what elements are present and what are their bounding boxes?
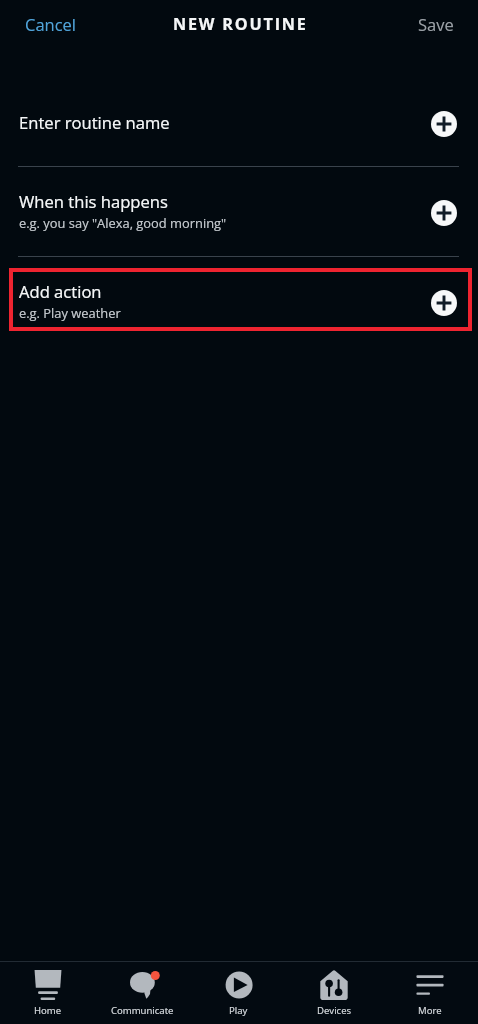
staticText: NEW ROUTINE <box>173 13 308 35</box>
staticText: e.g. Play weather <box>19 304 121 322</box>
staticText: Enter routine name <box>19 111 170 134</box>
staticText: e.g. you say "Alexa, good morning" <box>19 214 227 232</box>
button[interactable]: Play <box>190 962 286 1024</box>
button[interactable]: Communicate <box>95 962 190 1024</box>
button[interactable]: When this happens <box>0 171 478 251</box>
staticText: Home <box>34 1004 62 1017</box>
button[interactable]: Home <box>0 962 95 1024</box>
staticText: When this happens <box>19 190 168 213</box>
button[interactable]: Enter routine name <box>0 87 478 157</box>
button[interactable]: Add action <box>0 261 478 341</box>
button[interactable]: Devices <box>286 962 382 1024</box>
staticText: Cancel <box>25 13 77 35</box>
button[interactable]: Add <box>431 111 457 137</box>
staticText: Add action <box>19 280 102 303</box>
staticText: Devices <box>317 1004 352 1017</box>
staticText: Communicate <box>111 1004 174 1017</box>
staticText: More <box>418 1004 442 1017</box>
button[interactable]: Add <box>431 290 457 316</box>
button[interactable]: Cancel <box>0 3 103 45</box>
staticText: Play <box>229 1004 248 1017</box>
staticText: Save <box>418 13 454 35</box>
button[interactable]: Add <box>431 200 457 226</box>
button[interactable]: Save <box>394 3 478 45</box>
button[interactable]: More <box>382 962 478 1024</box>
